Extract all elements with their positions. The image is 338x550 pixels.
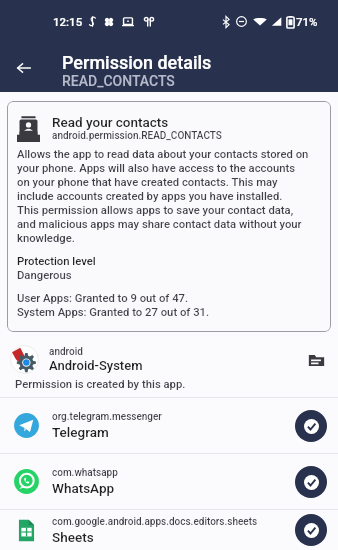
staticText: android	[49, 346, 83, 358]
staticText: 12:15	[53, 15, 83, 28]
staticText: Dangerous	[17, 269, 72, 282]
staticText: Read your contacts	[52, 114, 169, 130]
button[interactable]: Permission granted	[295, 410, 327, 442]
staticText: Allows the app to read data about your c…	[17, 148, 310, 245]
staticText: com.google.android.apps.docs.editors.she…	[52, 516, 258, 528]
button[interactable]: Permission granted	[295, 514, 327, 546]
button[interactable]: Back	[8, 52, 40, 84]
staticText: com.whatsapp	[52, 467, 118, 479]
button[interactable]: com.google.android.apps.docs.editors.she…	[0, 510, 338, 550]
staticText: org.telegram.messenger	[52, 411, 162, 423]
staticText: READ_CONTACTS	[62, 73, 175, 89]
button[interactable]: android	[0, 338, 338, 397]
staticText: Protection level	[17, 255, 96, 268]
staticText: 71%	[296, 15, 318, 28]
button[interactable]: App details	[303, 347, 329, 373]
staticText: Telegram	[52, 424, 109, 440]
button[interactable]: Permission granted	[295, 466, 327, 498]
staticText: User Apps: Granted to 9 out of 47.	[17, 292, 189, 305]
staticText: Sheets	[52, 529, 94, 545]
staticText: android.permission.READ_CONTACTS	[52, 130, 222, 142]
staticText: Android-System	[49, 358, 143, 373]
button[interactable]: com.whatsapp	[0, 454, 338, 509]
staticText: System Apps: Granted to 27 out of 31.	[17, 306, 210, 319]
staticText: Permission details	[62, 52, 212, 73]
staticText: Permission is created by this app.	[15, 378, 186, 391]
staticText: WhatsApp	[52, 480, 115, 496]
button[interactable]: org.telegram.messenger	[0, 398, 338, 453]
